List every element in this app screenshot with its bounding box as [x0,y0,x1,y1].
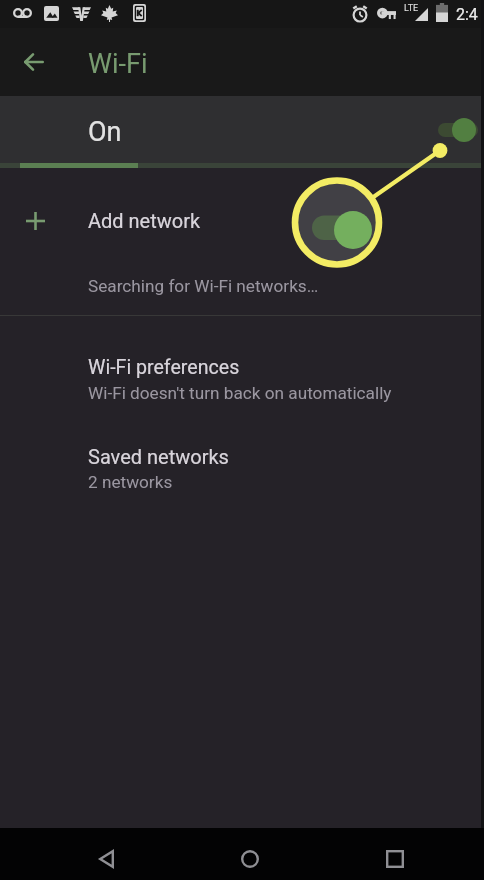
button[interactable]: Home [210,828,290,880]
staticText: Add network [88,209,201,232]
button[interactable]: Recent apps [355,828,435,880]
staticText: Saved networks [88,445,229,468]
staticText: Wi-Fi [88,48,148,80]
button[interactable]: On [0,96,484,163]
staticText: LTE [404,3,419,14]
staticText: 2:4 [456,5,478,24]
staticText: 2 networks [88,472,173,492]
button[interactable]: Back [66,828,146,880]
staticText: Wi-Fi preferences [88,356,240,379]
button[interactable]: Navigate up [10,38,58,86]
button[interactable]: Saved networks [0,433,484,504]
staticText: Wi-Fi doesn't turn back on automatically [88,383,392,403]
staticText: On [88,116,122,148]
staticText: Searching for Wi-Fi networks… [88,276,319,296]
button[interactable]: Wi-Fi preferences [0,344,484,415]
button[interactable]: Add network [0,185,484,257]
